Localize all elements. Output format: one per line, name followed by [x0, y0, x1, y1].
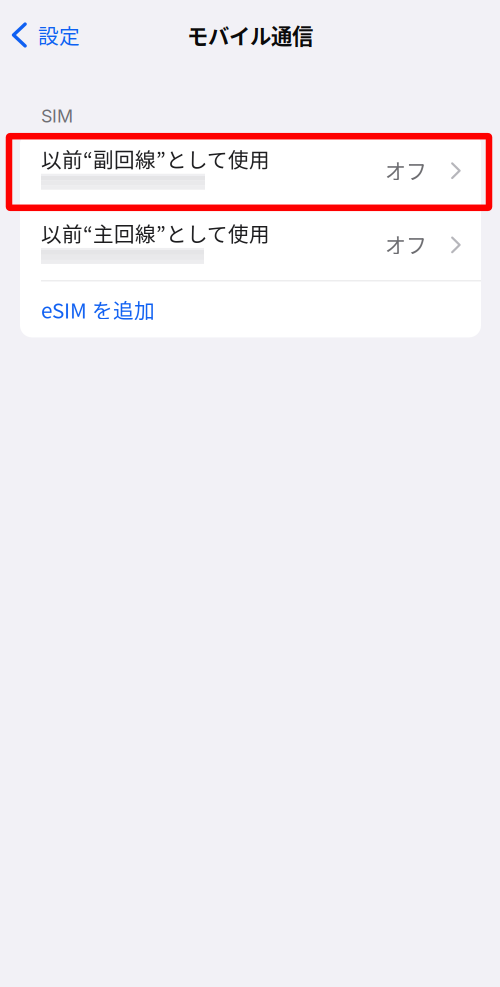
- staticText: モバイル通信: [187, 20, 313, 50]
- button[interactable]: eSIM を追加: [20, 281, 481, 337]
- staticText: 以前“副回線”として使用: [41, 144, 270, 174]
- staticText: eSIM を追加: [41, 294, 155, 324]
- staticText: オフ: [385, 154, 427, 185]
- staticText: 設定: [38, 20, 80, 50]
- staticText: 以前“主回線”として使用: [41, 218, 270, 248]
- button[interactable]: 以前“副回線”として使用: [20, 133, 481, 206]
- button[interactable]: 設定: [0, 0, 80, 70]
- button[interactable]: 以前“主回線”として使用: [20, 207, 481, 280]
- staticText: SIM: [41, 105, 73, 127]
- staticText: オフ: [385, 228, 427, 259]
